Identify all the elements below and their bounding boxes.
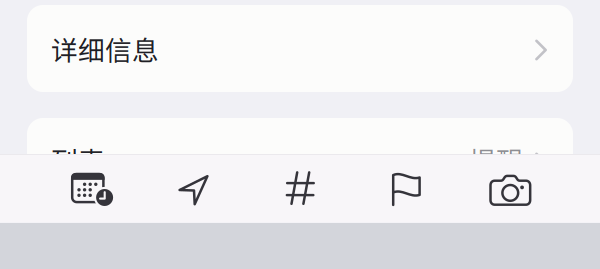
button[interactable]: 列表 <box>27 118 573 205</box>
staticText: 列表 <box>51 140 105 179</box>
staticText: 详细信息 <box>51 29 159 68</box>
button[interactable]: Add date <box>35 168 143 237</box>
button[interactable]: Add location <box>140 168 248 237</box>
button[interactable]: Flag <box>352 168 460 237</box>
button[interactable]: 详细信息 <box>27 5 573 92</box>
staticText: 提醒 <box>469 140 523 179</box>
button[interactable]: Add tag <box>247 168 355 237</box>
button[interactable]: Add photo <box>457 168 565 237</box>
